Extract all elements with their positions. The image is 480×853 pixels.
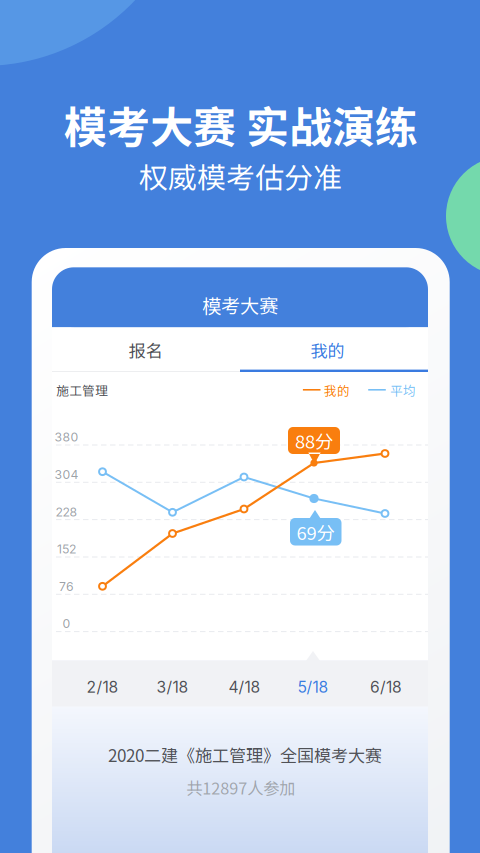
button[interactable]: 2/18 (68, 664, 136, 710)
button[interactable]: 6/18 (352, 664, 420, 710)
staticText: 2020二建《施工管理》全国模考大赛 (108, 742, 382, 767)
button[interactable]: 3/18 (138, 664, 206, 710)
staticText: 69分 (296, 519, 334, 545)
staticText: 228 (55, 505, 77, 519)
staticText: 2/18 (86, 678, 118, 696)
staticText: 380 (54, 430, 78, 444)
staticText: 施工管理 (56, 381, 108, 399)
staticText: 报名 (129, 337, 163, 362)
staticText: 0 (62, 616, 70, 631)
staticText: 304 (54, 467, 78, 482)
staticText: 权威模考估分准 (139, 155, 342, 197)
button[interactable]: 4/18 (210, 664, 278, 710)
staticText: 76 (59, 579, 74, 594)
button[interactable]: 我的 (233, 328, 421, 372)
button[interactable]: 报名 (52, 328, 240, 372)
staticText: 3/18 (156, 678, 188, 696)
staticText: 4/18 (228, 678, 260, 696)
button[interactable]: 5/18 (279, 664, 347, 710)
button[interactable]: 模考大赛 (170, 285, 310, 325)
staticText: 平均 (390, 381, 416, 399)
staticText: 6/18 (370, 678, 402, 696)
staticText: 模考大赛 (202, 291, 278, 319)
staticText: 我的 (310, 337, 344, 362)
staticText: 模考大赛 实战演练 (64, 93, 418, 156)
staticText: 5/18 (297, 678, 328, 696)
staticText: 我的 (324, 381, 350, 399)
staticText: 152 (57, 542, 76, 556)
staticText: 共12897人参加 (186, 776, 295, 799)
staticText: 88分 (295, 427, 333, 454)
